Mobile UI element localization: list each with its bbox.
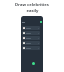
button[interactable] bbox=[22, 36, 40, 40]
button[interactable] bbox=[22, 26, 40, 30]
staticText: Draw celebrities bbox=[15, 2, 49, 8]
button[interactable] bbox=[22, 31, 40, 35]
button[interactable]: Add bbox=[32, 62, 35, 65]
staticText: easily bbox=[26, 8, 39, 14]
button[interactable] bbox=[22, 46, 40, 50]
button[interactable] bbox=[22, 41, 40, 45]
